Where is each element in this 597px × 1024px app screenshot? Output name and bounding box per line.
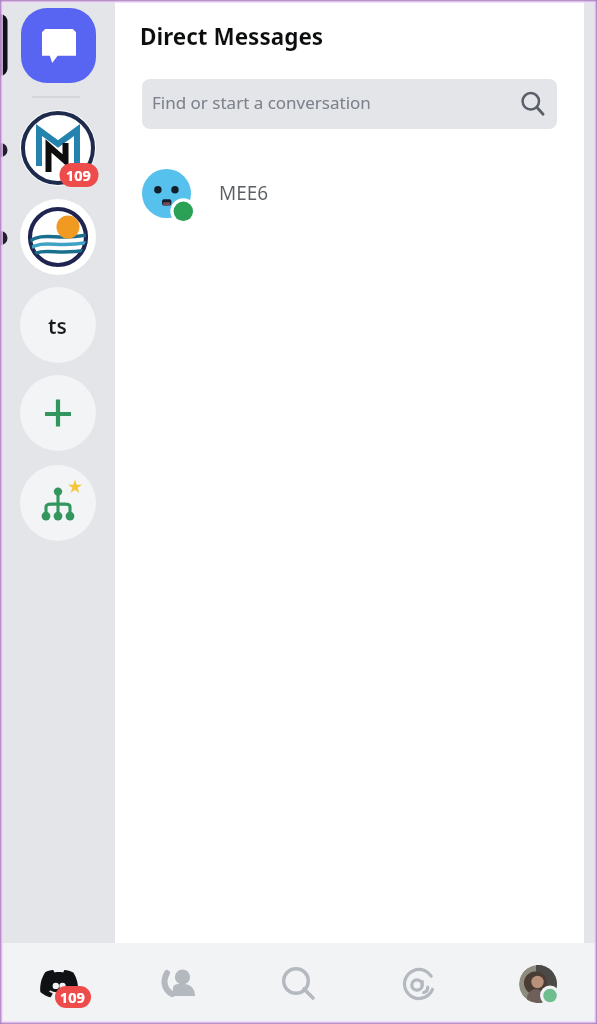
button[interactable]: Ocean Server (20, 199, 96, 275)
button[interactable]: Search (240, 943, 359, 1024)
button[interactable]: Explore Servers (20, 465, 96, 541)
staticText: 109 (60, 987, 85, 1007)
button[interactable]: Add a Server (20, 375, 96, 451)
button[interactable]: MEE6 Server (20, 110, 96, 186)
button[interactable]: Servers (0, 943, 120, 1024)
staticText: Direct Messages (140, 21, 324, 52)
staticText: 109 (66, 165, 91, 185)
button[interactable]: Direct Messages (21, 8, 96, 83)
button[interactable]: Friends (120, 943, 240, 1024)
button[interactable]: You (478, 943, 597, 1024)
button[interactable]: MEE6 (115, 163, 584, 223)
button[interactable]: Mentions (359, 943, 478, 1024)
staticText: MEE6 (219, 180, 269, 206)
staticText: ts (48, 312, 67, 341)
staticText: Find or start a conversation (152, 91, 371, 114)
button[interactable]: Find or start a conversation (142, 79, 557, 129)
button[interactable]: ts Server (20, 287, 96, 363)
